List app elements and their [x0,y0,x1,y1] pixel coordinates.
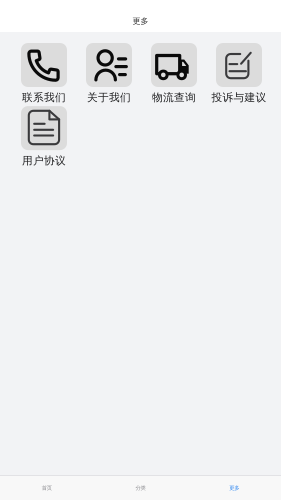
button[interactable]: 联系我们 [16,43,72,104]
button[interactable]: 关于我们 [81,43,137,104]
button[interactable]: 用户协议 [16,106,72,167]
button[interactable]: 物流查询 [146,43,202,104]
staticText: 用户协议 [22,154,66,167]
staticText: 更多 [229,485,239,491]
staticText: 分类 [135,485,145,491]
staticText: 联系我们 [22,91,66,104]
button[interactable]: 更多 [187,476,281,500]
staticText: 首页 [42,485,52,491]
staticText: 更多 [132,16,148,26]
staticText: 关于我们 [87,91,131,104]
staticText: 投诉与建议 [211,91,266,104]
button[interactable]: 分类 [94,476,187,500]
button[interactable]: 首页 [0,476,94,500]
staticText: 物流查询 [152,91,196,104]
button[interactable]: 投诉与建议 [211,43,267,104]
